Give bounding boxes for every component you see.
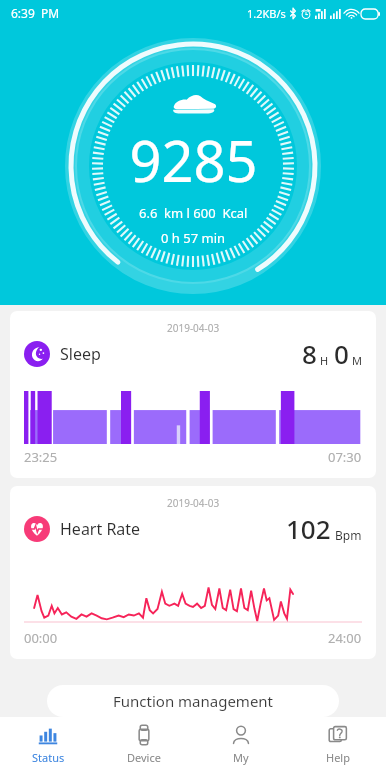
staticText: 9285 xyxy=(129,122,258,198)
staticText: H xyxy=(320,353,329,368)
staticText: Function management xyxy=(113,691,274,711)
button[interactable]: 2019-04-03 xyxy=(10,311,376,478)
staticText: 0 h 57 min xyxy=(161,229,226,247)
staticText: 2019-04-03 xyxy=(167,496,220,510)
button[interactable]: My xyxy=(192,717,289,772)
staticText: Status xyxy=(32,750,65,765)
staticText: 00:00 xyxy=(24,629,58,647)
staticText: 2019-04-03 xyxy=(167,321,220,335)
button[interactable]: Help xyxy=(289,717,386,772)
staticText: My xyxy=(233,750,249,765)
staticText: 1.2KB/s xyxy=(247,6,286,21)
staticText: M xyxy=(352,353,362,368)
staticText: Device xyxy=(127,750,161,765)
staticText: Heart Rate xyxy=(60,518,141,540)
staticText: 6:39 PM xyxy=(11,5,60,21)
staticText: 07:30 xyxy=(328,448,362,466)
staticText: 6.6 km l 600 Kcal xyxy=(139,204,248,222)
staticText: 24:00 xyxy=(328,629,362,647)
staticText: 23:25 xyxy=(24,448,58,466)
button[interactable]: Function management xyxy=(47,685,339,717)
button[interactable]: 2019-04-03 xyxy=(10,486,376,659)
button[interactable]: Status xyxy=(0,717,96,772)
button[interactable]: Device xyxy=(96,717,192,772)
staticText: Help xyxy=(326,750,350,765)
staticText: Sleep xyxy=(60,343,101,365)
staticText: 8 xyxy=(302,336,317,371)
staticText: 102 xyxy=(286,511,331,546)
staticText: 0 xyxy=(334,336,349,371)
staticText: Bpm xyxy=(335,527,362,543)
